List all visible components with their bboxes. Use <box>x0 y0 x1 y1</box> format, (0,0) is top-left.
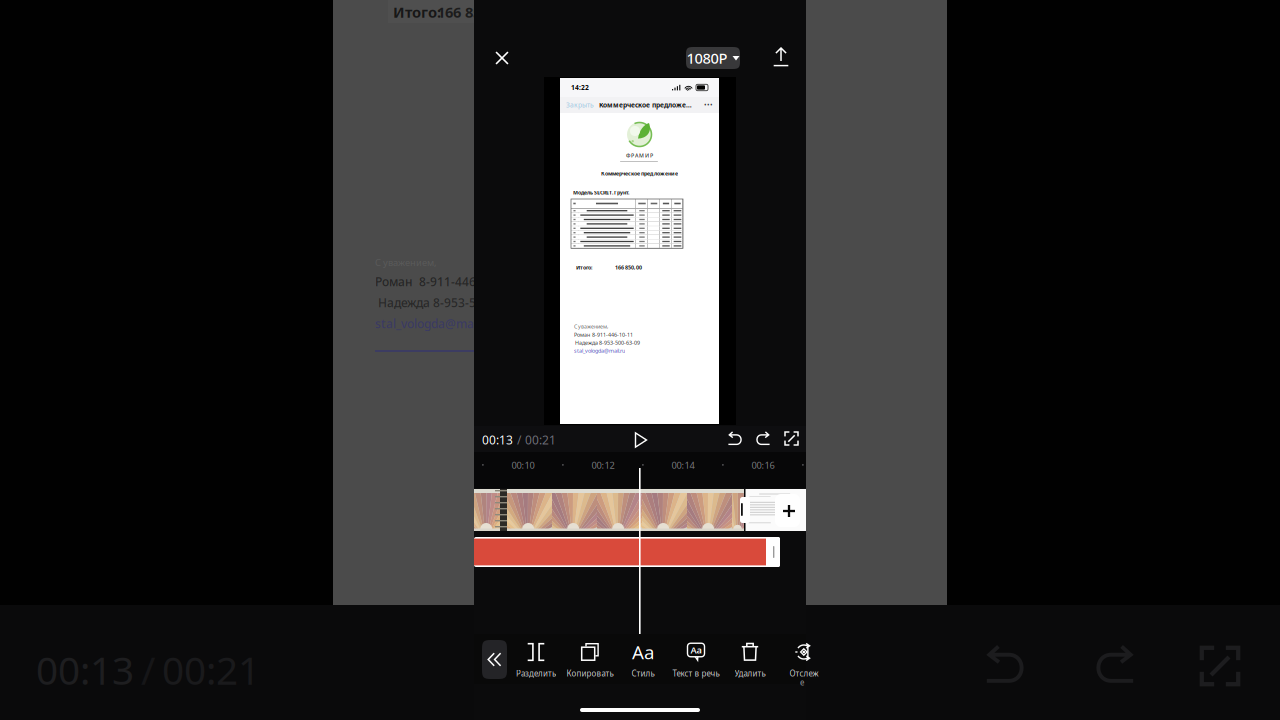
staticText: Удалить <box>734 668 765 679</box>
staticText: Aa <box>632 640 654 664</box>
staticText: С уважением, <box>574 323 608 330</box>
staticText: 00:12 <box>591 459 614 471</box>
staticText: 00:14 <box>671 459 694 471</box>
staticText: 00:21 <box>525 432 556 448</box>
button[interactable]: Collapse toolbar <box>482 640 507 679</box>
staticText: 00:10 <box>511 459 534 471</box>
staticText: Коммерческое предложение <box>601 170 678 177</box>
staticText: Текст в речь <box>672 668 719 679</box>
button[interactable]: Копировать <box>563 642 617 686</box>
staticText: Ф Р А М И Р <box>626 152 653 159</box>
staticText: Разделить <box>516 668 556 679</box>
staticText: stal_vologda@mail.ru <box>375 315 496 331</box>
staticText: Aa <box>690 644 701 656</box>
staticText: Итого: <box>576 264 592 271</box>
button[interactable]: Undo <box>727 431 743 446</box>
staticText: / <box>517 432 521 448</box>
staticText: Надежда 8-953-500-63-09 <box>375 294 526 310</box>
button[interactable]: Отслеж <box>778 642 830 686</box>
staticText: 1080P <box>686 48 727 68</box>
staticText: 00:13 <box>482 432 513 448</box>
staticText: Итого: <box>393 2 441 22</box>
staticText: / <box>141 644 155 695</box>
staticText: Надежда 8-953-500-63-09 <box>574 339 640 346</box>
staticText: С уважением, <box>375 256 437 269</box>
button[interactable]: 1080P <box>686 47 740 69</box>
staticText: ••• <box>704 101 713 109</box>
button[interactable]: Add clip <box>781 503 797 519</box>
button[interactable]: Play <box>632 431 650 449</box>
button[interactable]: Full screen <box>784 431 799 446</box>
staticText: е <box>800 677 804 688</box>
staticText: Коммерческое предложе… <box>599 101 692 109</box>
staticText: 166 850,00 <box>615 264 642 271</box>
staticText: stal_vologda@mail.ru <box>574 347 625 354</box>
staticText: Модель SECRET. Грунт. <box>573 189 629 196</box>
button[interactable]: Разделить <box>509 642 563 686</box>
button[interactable]: Redo <box>755 431 771 446</box>
staticText: 14:22 <box>571 83 589 92</box>
button[interactable]: Export <box>762 38 800 76</box>
button[interactable]: Close <box>483 39 521 77</box>
staticText: 166 850 <box>437 2 489 22</box>
staticText: Закрыть <box>566 101 594 109</box>
staticText: Стиль <box>631 668 654 679</box>
button[interactable]: Aa <box>616 642 670 686</box>
staticText: 00:16 <box>751 459 774 471</box>
staticText: Роман 8-911-446-10-11 <box>375 273 512 289</box>
staticText: Роман 8-911-446-10-11 <box>574 331 633 338</box>
button[interactable]: Удалить <box>723 642 777 686</box>
staticText: 00:13 <box>36 644 134 695</box>
staticText: Отслеж <box>789 668 818 679</box>
button[interactable]: Aa <box>669 642 723 686</box>
staticText: 00:21 <box>162 644 260 695</box>
staticText: Копировать <box>566 668 613 679</box>
